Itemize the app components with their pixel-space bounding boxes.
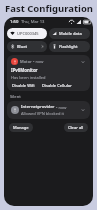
staticText: Manage: [13, 125, 29, 130]
button[interactable]: Disable Cellular: [41, 83, 73, 88]
staticText: Disable Cellular: [42, 83, 72, 88]
button[interactable]: Bluetooth: [7, 41, 47, 52]
button[interactable]: Disable Wifi: [11, 83, 36, 88]
staticText: Disable Wifi: [12, 83, 35, 88]
staticText: Bluetooth: [17, 44, 29, 49]
staticText: Allowed VPN blocked it: [21, 111, 64, 116]
staticText: Fast Configuration: [5, 2, 93, 15]
staticText: UPC000345: [17, 31, 39, 36]
button[interactable]: Clear all: [64, 123, 88, 132]
button[interactable]: Motor: [7, 55, 90, 91]
staticText: Clear all: [68, 125, 84, 130]
staticText: Thu, Mar 13: [21, 19, 45, 25]
staticText: Motor: [20, 59, 32, 64]
staticText: Flashlight: [59, 44, 78, 49]
staticText: IPv6Monitor: [11, 67, 38, 73]
staticText: Silent: [10, 94, 21, 99]
button[interactable]: Flashlight: [49, 41, 90, 52]
staticText: • now: [33, 59, 44, 64]
button[interactable]: Internetprovider: [7, 101, 90, 119]
button[interactable]: Expand notification: [80, 107, 86, 113]
staticText: 1:50: [10, 19, 19, 25]
staticText: • now: [56, 105, 67, 110]
button[interactable]: Manage: [9, 123, 33, 132]
button[interactable]: UPC000345: [7, 28, 47, 39]
staticText: Mobile data: [59, 31, 82, 36]
button[interactable]: Expand notification: [80, 59, 86, 65]
staticText: Internetprovider: [21, 104, 55, 110]
button[interactable]: Mobile data: [49, 28, 90, 39]
staticText: Has been installed: [11, 75, 46, 80]
